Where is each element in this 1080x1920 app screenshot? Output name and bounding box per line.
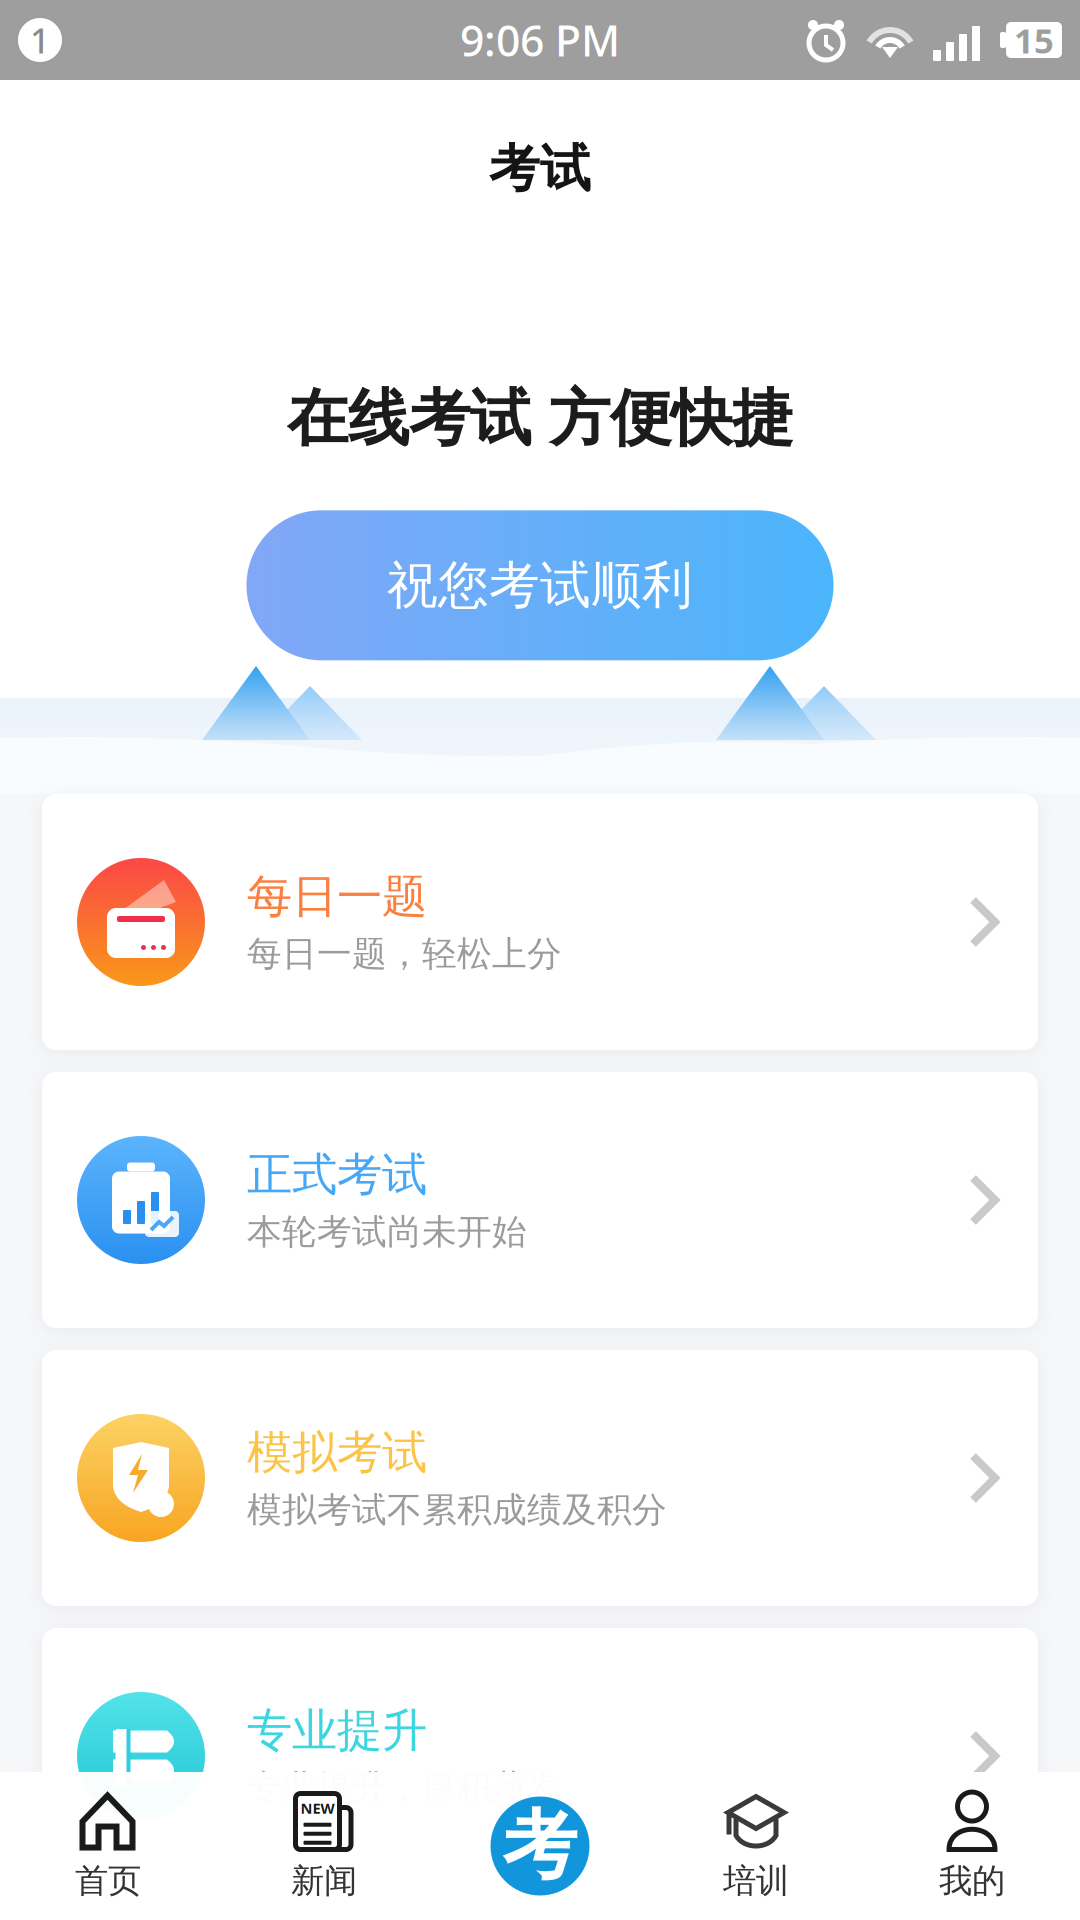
button[interactable]: 我的 [864,1772,1080,1920]
staticText: 考试 [489,138,591,200]
button[interactable]: 首页 [0,1772,216,1920]
button[interactable]: NEW [216,1772,432,1920]
staticText: 模拟考试 [247,1425,427,1481]
staticText: 专业提升 [247,1703,427,1759]
button[interactable]: 每日一题 [42,794,1038,1050]
staticText: 模拟考试不累积成绩及积分 [247,1489,667,1531]
staticText: 专业提升，厚积薄发 [247,1767,562,1809]
staticText: 每日一题 [247,869,427,925]
staticText: 每日一题，轻松上分 [247,933,562,975]
staticText: 本轮考试尚未开始 [247,1211,527,1253]
staticText: 9:06 PM [460,12,620,68]
staticText: 祝您考试顺利 [387,554,693,616]
staticText: 考 [502,1800,577,1892]
staticText: 在线考试 方便快捷 [287,381,793,456]
button[interactable]: 培训 [648,1772,864,1920]
button[interactable]: 模拟考试 [42,1350,1038,1606]
button[interactable]: 正式考试 [42,1072,1038,1328]
button[interactable]: 考试 [432,1772,648,1920]
staticText: 15 [1014,17,1054,63]
staticText: 1 [30,17,50,63]
staticText: 新闻 [291,1860,357,1901]
staticText: 首页 [75,1860,141,1901]
staticText: 培训 [723,1860,789,1901]
button[interactable]: 专业提升 [42,1628,1038,1884]
staticText: 我的 [939,1860,1005,1901]
staticText: 正式考试 [247,1147,427,1203]
staticText: NEW [300,1798,334,1818]
